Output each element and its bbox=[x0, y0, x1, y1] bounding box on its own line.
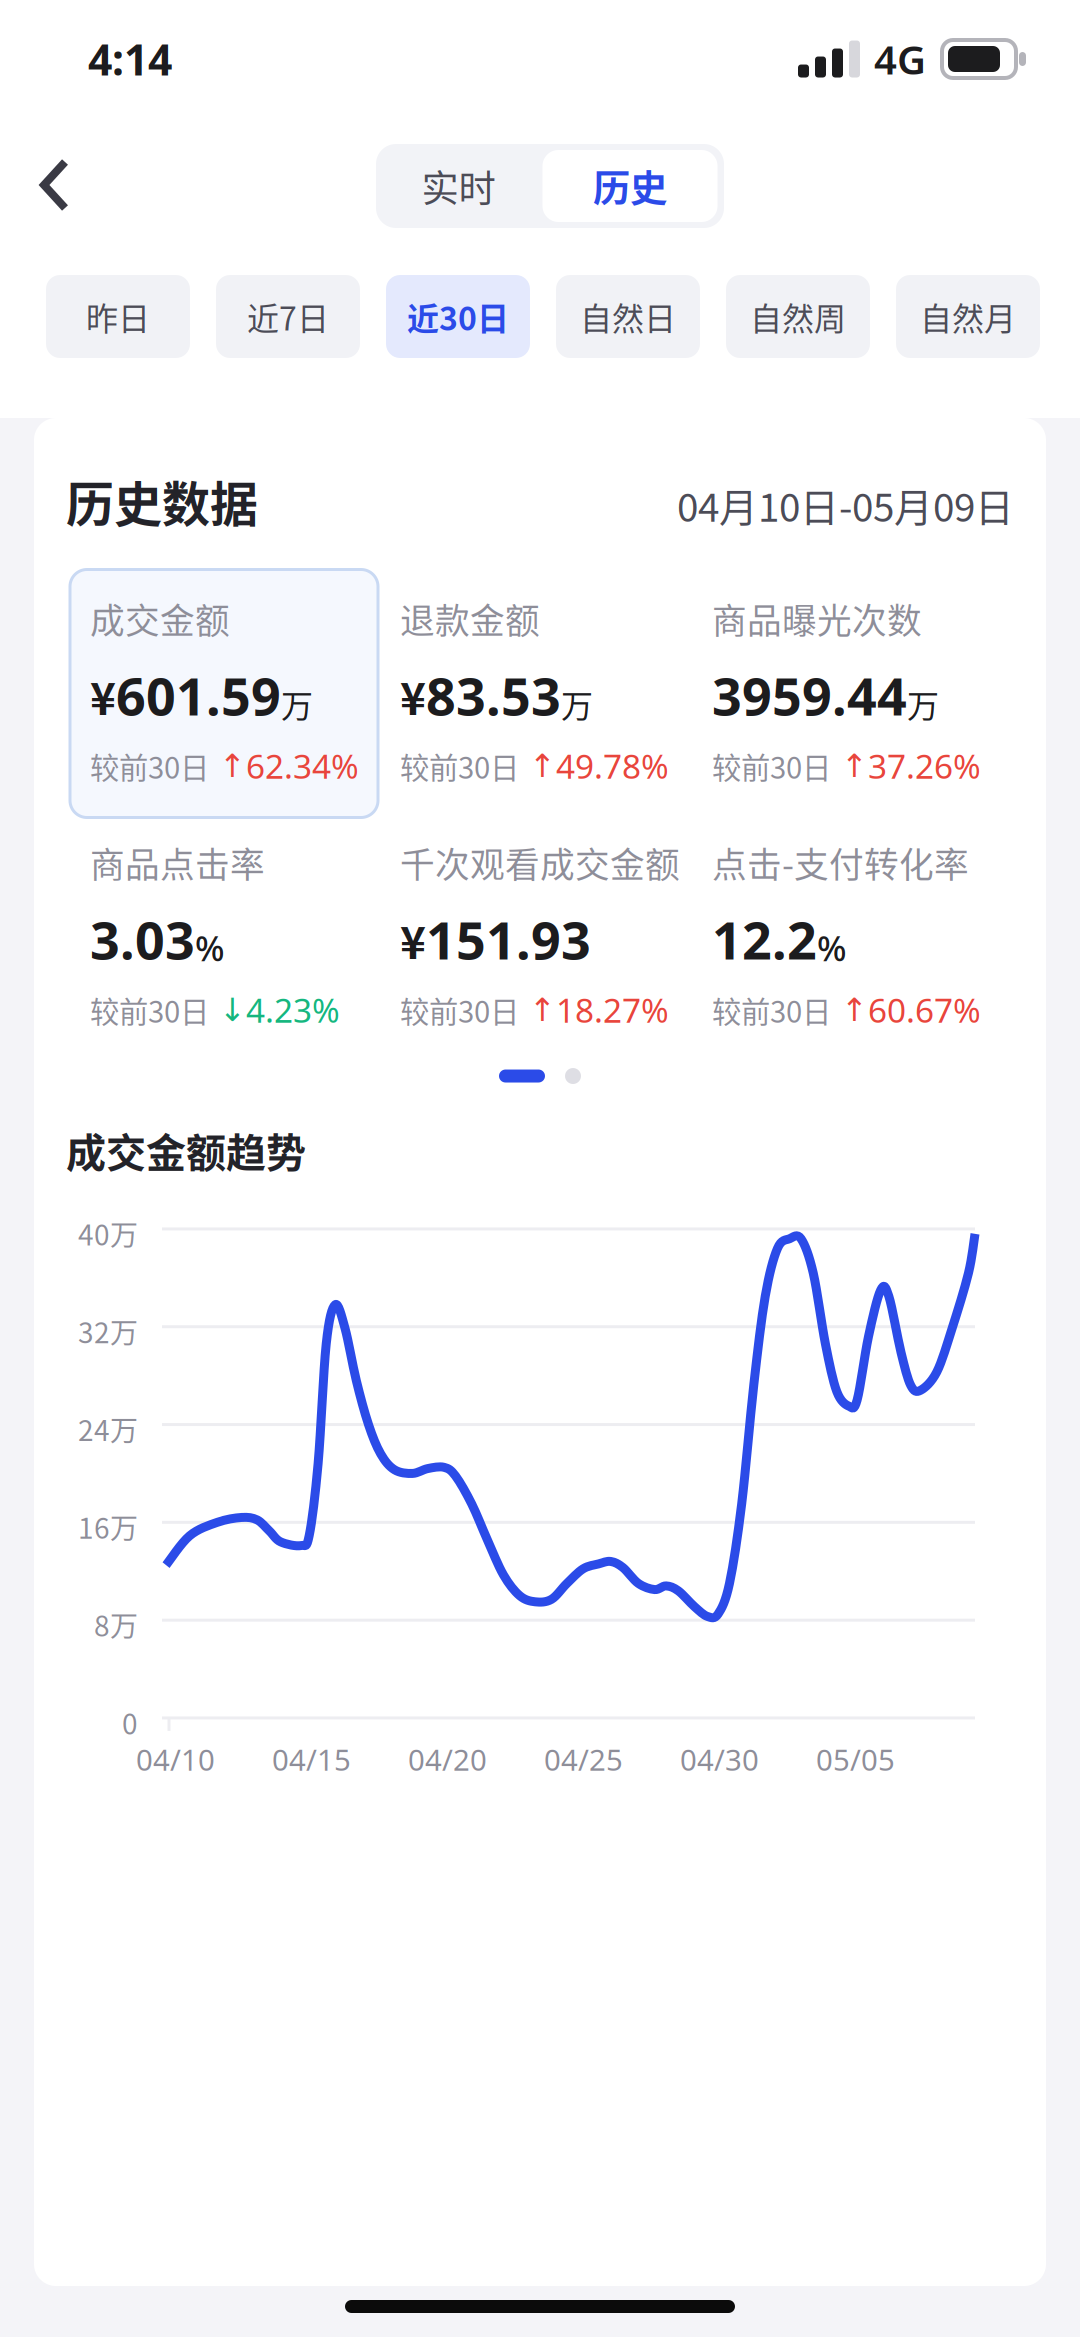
staticText: 62.34% bbox=[246, 744, 359, 788]
staticText: 3959.44 bbox=[712, 661, 907, 730]
staticText: 04/15 bbox=[272, 1740, 351, 1779]
staticText: 05/05 bbox=[816, 1740, 895, 1779]
staticText: 自然日 bbox=[580, 293, 676, 340]
staticText: 点击-支付转化率 bbox=[712, 837, 969, 888]
button[interactable]: 昨日 bbox=[46, 275, 190, 358]
staticText: ↑ bbox=[831, 992, 868, 1028]
button[interactable]: 自然周 bbox=[726, 275, 870, 358]
staticText: 12.2 bbox=[712, 905, 817, 974]
staticText: 04/20 bbox=[408, 1740, 487, 1779]
staticText: 成交金额 bbox=[90, 593, 230, 644]
staticText: ↓ bbox=[209, 992, 246, 1028]
staticText: 自然月 bbox=[920, 293, 1016, 340]
button[interactable]: 近7日 bbox=[216, 275, 360, 358]
staticText: ↑ bbox=[831, 748, 868, 784]
button[interactable]: 近30日 bbox=[386, 275, 530, 358]
staticText: 万 bbox=[561, 680, 593, 727]
staticText: 3.03 bbox=[90, 905, 195, 974]
staticText: 较前30日 bbox=[400, 745, 519, 787]
staticText: ↑ bbox=[519, 748, 556, 784]
button[interactable]: 实时 bbox=[374, 144, 542, 228]
staticText: 0 bbox=[122, 1702, 138, 1742]
staticText: 04/30 bbox=[680, 1740, 759, 1779]
staticText: ¥ bbox=[400, 664, 426, 728]
button[interactable]: 自然月 bbox=[896, 275, 1040, 358]
staticText: 04月10日-05月09日 bbox=[677, 477, 1014, 533]
staticText: 83.53 bbox=[426, 661, 561, 730]
staticText: 04/10 bbox=[136, 1740, 215, 1779]
staticText: 16万 bbox=[78, 1506, 138, 1547]
staticText: 4G bbox=[874, 32, 926, 85]
staticText: 自然周 bbox=[750, 293, 846, 340]
staticText: 实时 bbox=[421, 159, 495, 213]
staticText: 40万 bbox=[78, 1213, 138, 1253]
button[interactable]: Back bbox=[12, 144, 98, 228]
button[interactable]: 商品点击率 bbox=[90, 837, 400, 1032]
staticText: 昨日 bbox=[86, 293, 150, 340]
staticText: 较前30日 bbox=[90, 989, 209, 1031]
staticText: 49.78% bbox=[556, 744, 669, 788]
staticText: ¥ bbox=[90, 664, 116, 728]
staticText: 4:14 bbox=[88, 31, 172, 87]
staticText: 60.67% bbox=[868, 988, 981, 1032]
staticText: 万 bbox=[281, 680, 313, 727]
staticText: 商品点击率 bbox=[90, 837, 265, 888]
staticText: 较前30日 bbox=[400, 989, 519, 1031]
button[interactable]: 退款金额 bbox=[400, 569, 712, 812]
staticText: 千次观看成交金额 bbox=[400, 837, 680, 888]
button[interactable]: 点击-支付转化率 bbox=[712, 837, 1012, 1032]
staticText: % bbox=[817, 925, 847, 971]
staticText: 18.27% bbox=[556, 988, 669, 1032]
staticText: 退款金额 bbox=[400, 593, 540, 644]
staticText: % bbox=[195, 925, 225, 971]
staticText: 151.93 bbox=[426, 905, 591, 974]
staticText: 商品曝光次数 bbox=[712, 593, 922, 644]
staticText: 较前30日 bbox=[90, 745, 209, 787]
staticText: 近30日 bbox=[407, 293, 509, 340]
staticText: 32万 bbox=[78, 1311, 138, 1351]
staticText: ¥ bbox=[400, 908, 426, 972]
staticText: 8万 bbox=[94, 1604, 138, 1645]
staticText: 万 bbox=[907, 680, 939, 727]
staticText: ↑ bbox=[519, 992, 556, 1028]
staticText: 4.23% bbox=[246, 988, 340, 1032]
staticText: 24万 bbox=[78, 1408, 138, 1449]
button[interactable]: 成交金额 bbox=[70, 569, 400, 817]
staticText: ↑ bbox=[209, 748, 246, 784]
staticText: 近7日 bbox=[247, 293, 329, 340]
staticText: 成交金额趋势 bbox=[66, 1121, 306, 1179]
staticText: 601.59 bbox=[116, 661, 281, 730]
staticText: 37.26% bbox=[868, 744, 981, 788]
staticText: 较前30日 bbox=[712, 989, 831, 1031]
staticText: 较前30日 bbox=[712, 745, 831, 787]
button[interactable]: 千次观看成交金额 bbox=[400, 837, 712, 1032]
button[interactable]: 历史 bbox=[542, 150, 725, 222]
staticText: 历史 bbox=[593, 159, 667, 213]
button[interactable]: 商品曝光次数 bbox=[712, 569, 1012, 812]
staticText: 历史数据 bbox=[66, 466, 258, 535]
staticText: 04/25 bbox=[544, 1740, 623, 1779]
button[interactable]: 自然日 bbox=[556, 275, 700, 358]
